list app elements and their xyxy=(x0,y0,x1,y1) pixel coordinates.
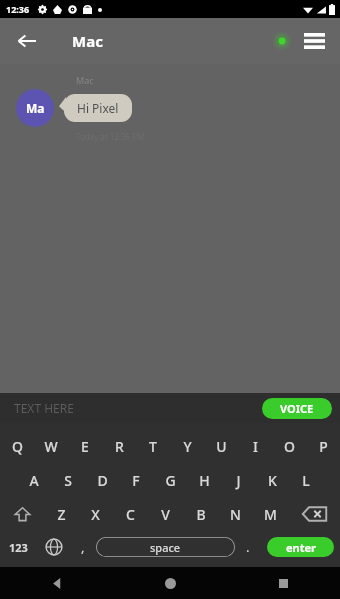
staticText: P xyxy=(319,437,328,456)
button[interactable]: R xyxy=(102,429,136,463)
staticText: C xyxy=(126,505,135,524)
button[interactable]: enter xyxy=(267,537,334,557)
button[interactable]: L xyxy=(289,463,323,497)
button[interactable]: W xyxy=(34,429,68,463)
button[interactable]: U xyxy=(204,429,238,463)
button[interactable]: Backspace xyxy=(288,497,340,531)
staticText: Q xyxy=(12,437,23,456)
staticText: I xyxy=(253,437,258,456)
button[interactable]: Hi Pixel xyxy=(64,94,132,122)
staticText: X xyxy=(91,505,100,524)
button[interactable]: T xyxy=(136,429,170,463)
button[interactable]: J xyxy=(221,463,255,497)
button[interactable]: , xyxy=(70,531,96,563)
button[interactable]: Ma xyxy=(16,89,54,127)
staticText: Z xyxy=(57,505,66,524)
button[interactable]: Menu xyxy=(298,25,330,57)
button[interactable]: N xyxy=(218,497,253,531)
button[interactable]: . xyxy=(235,531,261,563)
button[interactable]: Recent apps xyxy=(227,567,340,599)
staticText: S xyxy=(64,471,72,490)
button[interactable]: O xyxy=(272,429,306,463)
staticText: Ma xyxy=(26,100,45,116)
staticText: L xyxy=(302,471,310,490)
button[interactable]: F xyxy=(119,463,153,497)
staticText: . xyxy=(246,538,250,556)
staticText: A xyxy=(29,471,39,490)
button[interactable]: H xyxy=(187,463,221,497)
staticText: U xyxy=(216,437,227,456)
staticText: B xyxy=(196,505,206,524)
staticText: G xyxy=(165,471,176,490)
staticText: R xyxy=(115,437,124,456)
staticText: 123 xyxy=(9,540,28,555)
button[interactable]: 123 xyxy=(0,531,37,563)
button[interactable]: space xyxy=(96,537,235,557)
button[interactable]: K xyxy=(255,463,289,497)
staticText: space xyxy=(150,540,181,555)
button[interactable]: VOICE xyxy=(262,398,332,419)
staticText: F xyxy=(132,471,140,490)
staticText: enter xyxy=(286,540,316,555)
button[interactable]: Y xyxy=(170,429,204,463)
button[interactable]: E xyxy=(68,429,102,463)
staticText: V xyxy=(161,505,170,524)
button[interactable]: D xyxy=(85,463,119,497)
staticText: T xyxy=(149,437,157,456)
staticText: 12:36 xyxy=(6,3,30,15)
button[interactable]: M xyxy=(253,497,288,531)
button[interactable]: V xyxy=(148,497,183,531)
button[interactable]: Change language xyxy=(37,531,70,563)
staticText: K xyxy=(268,471,277,490)
button[interactable]: Home xyxy=(114,567,227,599)
staticText: Mac xyxy=(76,74,94,86)
button[interactable]: Back xyxy=(10,24,44,58)
button[interactable]: I xyxy=(238,429,272,463)
button[interactable]: C xyxy=(113,497,148,531)
staticText: Hi Pixel xyxy=(77,100,119,116)
button[interactable]: TEXT HERE xyxy=(14,400,74,416)
staticText: E xyxy=(81,437,89,456)
button[interactable]: G xyxy=(153,463,187,497)
staticText: , xyxy=(81,538,85,556)
button[interactable]: B xyxy=(183,497,218,531)
button[interactable]: Shift xyxy=(0,497,44,531)
staticText: H xyxy=(199,471,210,490)
staticText: D xyxy=(97,471,108,490)
staticText: Y xyxy=(183,437,192,456)
staticText: Mac xyxy=(72,31,103,51)
button[interactable]: A xyxy=(17,463,51,497)
button[interactable]: Z xyxy=(44,497,78,531)
staticText: J xyxy=(236,471,241,490)
button[interactable]: Q xyxy=(0,429,34,463)
staticText: N xyxy=(230,505,241,524)
button[interactable]: X xyxy=(78,497,113,531)
staticText: VOICE xyxy=(280,401,314,416)
staticText: O xyxy=(284,437,295,456)
staticText: M xyxy=(264,505,277,524)
button[interactable]: Back xyxy=(0,567,114,599)
button[interactable]: S xyxy=(51,463,85,497)
staticText: W xyxy=(44,437,58,456)
button[interactable]: P xyxy=(306,429,340,463)
